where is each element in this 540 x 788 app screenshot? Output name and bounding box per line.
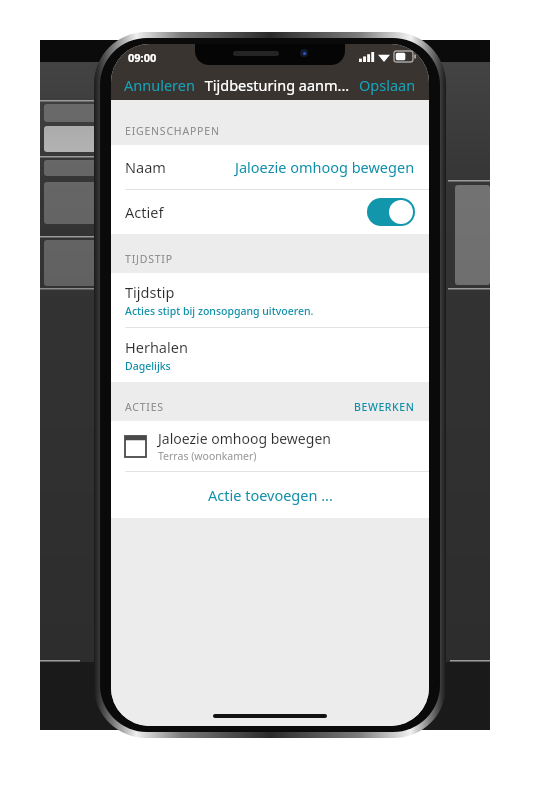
- staticText: EIGENSCHAPPEN: [125, 124, 220, 138]
- staticText: Dagelijks: [125, 359, 171, 373]
- button[interactable]: Jaloezie omhoog bewegen: [111, 421, 429, 471]
- staticText: Jaloezie omhoog bewegen: [235, 157, 415, 177]
- staticText: Actie toevoegen ...: [208, 485, 333, 505]
- button[interactable]: Naam: [111, 145, 429, 189]
- staticText: Tijdbesturing aanm...: [199, 75, 355, 95]
- staticText: TIJDSTIP: [125, 252, 173, 266]
- staticText: Acties stipt bij zonsopgang uitvoeren.: [125, 304, 314, 318]
- staticText: Terras (woonkamer): [158, 449, 257, 463]
- button[interactable]: BEWERKEN: [354, 400, 415, 414]
- staticText: Naam: [125, 157, 166, 177]
- staticText: Opslaan: [359, 75, 416, 95]
- button[interactable]: Herhalen: [111, 328, 429, 382]
- staticText: Annuleren: [124, 75, 195, 95]
- staticText: Actief: [125, 202, 164, 222]
- staticText: ACTIES: [125, 400, 164, 414]
- staticText: Tijdstip: [125, 282, 175, 302]
- button[interactable]: Opslaan: [355, 71, 429, 99]
- button[interactable]: Actie toevoegen ...: [111, 472, 429, 518]
- staticText: Jaloezie omhoog bewegen: [158, 429, 331, 448]
- staticText: Herhalen: [125, 337, 188, 357]
- button[interactable]: Annuleren: [111, 71, 199, 99]
- button[interactable]: Tijdstip: [111, 273, 429, 327]
- button[interactable]: Actief aan/uit: [367, 198, 415, 226]
- staticText: 09:00: [128, 50, 157, 65]
- button[interactable]: Actief: [111, 190, 429, 234]
- staticText: BEWERKEN: [354, 400, 415, 414]
